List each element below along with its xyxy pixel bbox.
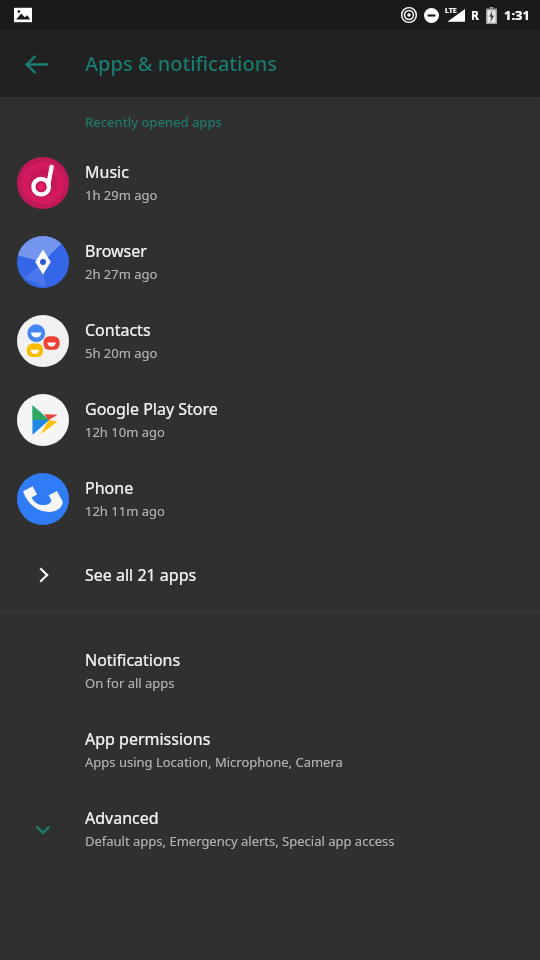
- button[interactable]: Phone: [0, 459, 540, 538]
- staticText: Apps & notifications: [85, 50, 277, 77]
- staticText: R: [471, 7, 479, 23]
- button[interactable]: Music: [0, 143, 540, 222]
- button[interactable]: Advanced: [0, 789, 540, 868]
- staticText: Advanced: [85, 807, 159, 829]
- staticText: 12h 11m ago: [85, 502, 165, 520]
- staticText: Music: [85, 161, 129, 183]
- staticText: Google Play Store: [85, 398, 218, 420]
- staticText: 12h 10m ago: [85, 423, 165, 441]
- button[interactable]: Contacts: [0, 301, 540, 380]
- staticText: Contacts: [85, 319, 151, 341]
- staticText: LTE: [445, 6, 457, 16]
- staticText: 2h 27m ago: [85, 265, 158, 283]
- staticText: See all 21 apps: [85, 564, 197, 586]
- staticText: 1h 29m ago: [85, 186, 158, 204]
- staticText: Browser: [85, 240, 147, 262]
- staticText: App permissions: [85, 728, 211, 750]
- staticText: Notifications: [85, 649, 181, 671]
- button[interactable]: App permissions: [0, 710, 540, 789]
- staticText: 1:31: [504, 6, 530, 24]
- staticText: 5h 20m ago: [85, 344, 158, 362]
- button[interactable]: See all 21 apps: [0, 538, 540, 612]
- button[interactable]: Google Play Store: [0, 380, 540, 459]
- staticText: Apps using Location, Microphone, Camera: [85, 753, 343, 771]
- staticText: Default apps, Emergency alerts, Special …: [85, 832, 395, 850]
- staticText: On for all apps: [85, 674, 175, 692]
- staticText: Recently opened apps: [85, 113, 222, 131]
- button[interactable]: Browser: [0, 222, 540, 301]
- button[interactable]: Notifications: [0, 631, 540, 710]
- staticText: Phone: [85, 477, 134, 499]
- button[interactable]: Back: [12, 40, 60, 88]
